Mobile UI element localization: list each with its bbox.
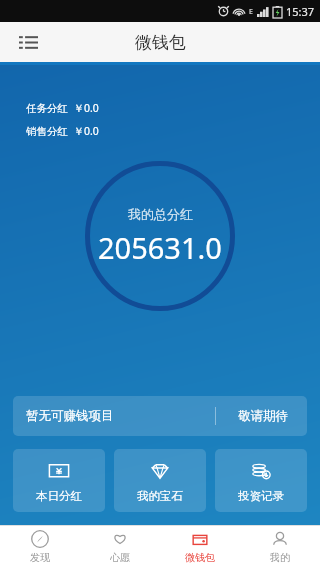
staticText: 本日分红 (36, 489, 82, 503)
button[interactable]: 我的 (240, 525, 320, 569)
staticText: 我的 (270, 551, 290, 564)
staticText: 15:37 (286, 4, 315, 19)
staticText: 心愿 (110, 551, 130, 564)
button[interactable]: 我的宝石 (114, 449, 206, 512)
staticText: 微钱包 (185, 551, 215, 564)
staticText: 任务分红 ￥0.0 (26, 101, 99, 115)
staticText: E (249, 7, 253, 17)
staticText: 投资记录 (238, 489, 284, 503)
staticText: 我的宝石 (137, 489, 183, 503)
button[interactable]: 发现 (0, 525, 80, 569)
staticText: 发现 (30, 551, 50, 564)
staticText: 微钱包 (135, 32, 186, 53)
button[interactable]: 心愿 (80, 525, 160, 569)
staticText: 205631.0 (98, 228, 222, 267)
button[interactable]: 暂无可赚钱项目 (13, 396, 307, 436)
button[interactable]: 微钱包 (160, 525, 240, 569)
staticText: 销售分红 ￥0.0 (26, 124, 99, 138)
staticText: 敬请期待 (238, 408, 288, 424)
button[interactable]: Menu (8, 22, 48, 62)
staticText: 我的总分红 (128, 206, 193, 222)
button[interactable]: 投资记录 (215, 449, 307, 512)
button[interactable]: 本日分红 (13, 449, 105, 512)
staticText: 暂无可赚钱项目 (26, 408, 114, 424)
